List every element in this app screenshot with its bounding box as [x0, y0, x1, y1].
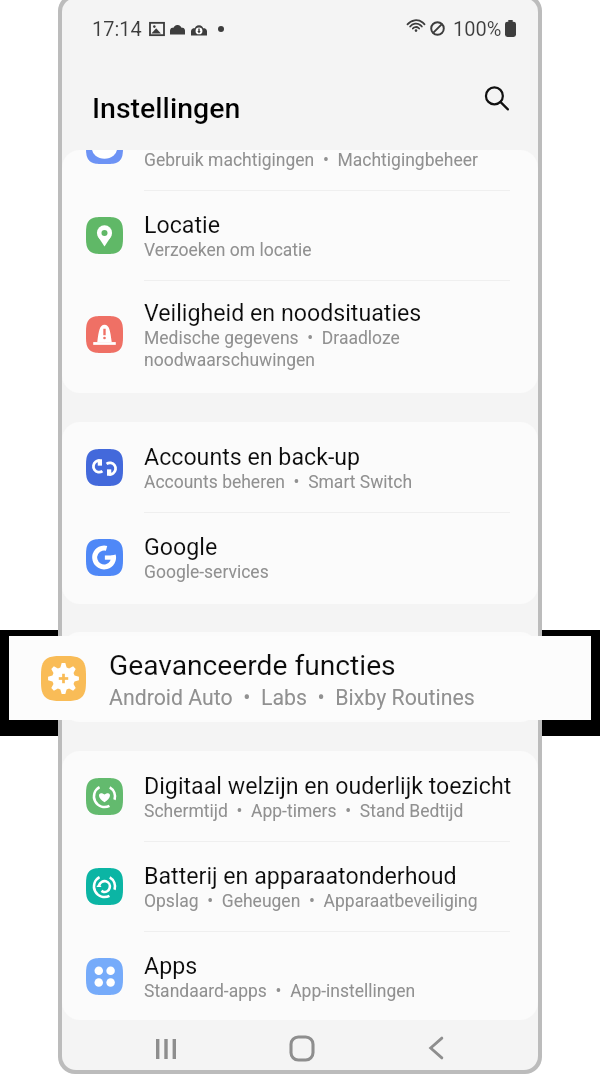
button[interactable]: Accounts en back-up: [62, 422, 538, 512]
button[interactable]: Batterij en apparaatonderhoud: [62, 841, 538, 931]
staticText: Gebruik machtigingen • Machtigingbeheer: [144, 150, 478, 171]
staticText: 100%: [453, 17, 502, 40]
staticText: Digitaal welzijn en ouderlijk toezicht: [144, 772, 512, 799]
staticText: Accounts en back-up: [144, 443, 361, 470]
staticText: noodwaarschuwingen: [144, 350, 315, 371]
button[interactable]: Search: [473, 75, 521, 123]
button[interactable]: Geavanceerde functies: [62, 632, 538, 722]
button[interactable]: Locatie: [62, 190, 538, 280]
staticText: Instellingen: [92, 92, 241, 125]
staticText: Veiligheid en noodsituaties: [144, 299, 422, 326]
button[interactable]: Digitaal welzijn en ouderlijk toezicht: [62, 751, 538, 841]
staticText: Geavanceerde functies: [144, 653, 380, 680]
button[interactable]: Privacy: [62, 150, 538, 190]
staticText: Accounts beheren • Smart Switch: [144, 472, 413, 493]
button[interactable]: Veiligheid en noodsituaties: [62, 280, 538, 388]
staticText: Schermtijd • App-timers • Stand Bedtijd: [144, 801, 464, 822]
button[interactable]: Recent apps: [142, 1025, 190, 1070]
staticText: Android Auto • Labs • Bixby Routines: [109, 685, 475, 710]
staticText: Google: [144, 533, 218, 560]
button[interactable]: Geavanceerde functies: [9, 636, 591, 720]
staticText: Batterij en apparaatonderhoud: [144, 862, 457, 889]
staticText: Locatie: [144, 211, 220, 238]
staticText: Standaard-apps • App-instellingen: [144, 981, 416, 1002]
button[interactable]: Google: [62, 512, 538, 602]
button[interactable]: Apps: [62, 931, 538, 1020]
staticText: Verzoeken om locatie: [144, 240, 312, 261]
staticText: 17:14: [92, 17, 142, 40]
button[interactable]: Back: [412, 1024, 460, 1070]
staticText: Android Auto • Labs • Bixby Routines: [144, 682, 445, 703]
staticText: Geavanceerde functies: [109, 649, 396, 682]
staticText: Apps: [144, 952, 198, 979]
button[interactable]: Home: [278, 1024, 326, 1070]
staticText: Google-services: [144, 562, 269, 583]
staticText: Medische gegevens • Draadloze: [144, 328, 400, 349]
staticText: Opslag • Geheugen • Apparaatbeveiliging: [144, 891, 478, 912]
